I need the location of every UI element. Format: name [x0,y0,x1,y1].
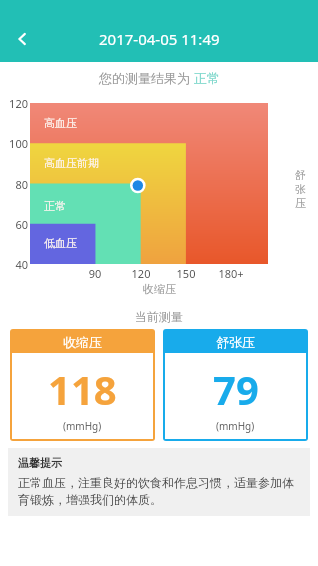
staticText: 收缩压 [63,334,102,350]
staticText: 收缩压 [143,282,176,296]
staticText: 180+ [214,266,248,281]
staticText: 高血压 [44,116,77,130]
staticText: 100 [2,136,28,151]
staticText: 79 [213,362,259,416]
staticText: 张 [295,182,306,196]
staticText: 正常 [194,70,220,86]
button[interactable]: Back [0,17,44,61]
staticText: 150 [169,266,203,281]
staticText: 低血压 [44,236,77,250]
staticText: 温馨提示 [18,456,62,470]
staticText: 60 [2,217,28,232]
staticText: 120 [124,266,158,281]
staticText: 40 [2,257,28,272]
staticText: 正常血压，注重良好的饮食和作息习惯，适量参加体育锻炼，增强我们的体质。 [18,475,300,508]
staticText: 90 [78,266,112,281]
staticText: 舒张压 [216,334,255,350]
button[interactable]: 收缩压 [10,329,155,441]
staticText: 80 [2,177,28,192]
staticText: 当前测量 [135,309,183,324]
button[interactable]: 舒张压 [163,329,308,441]
staticText: 120 [2,96,28,111]
staticText: 舒 [295,168,306,182]
staticText: 压 [295,196,306,210]
staticText: 118 [48,362,117,416]
staticText: 您的测量结果为 [99,69,194,87]
staticText: (mmHg) [216,419,255,433]
staticText: 2017-04-05 11:49 [99,29,220,49]
staticText: 高血压前期 [44,156,99,170]
staticText: 正常 [44,199,66,213]
staticText: (mmHg) [63,419,102,433]
